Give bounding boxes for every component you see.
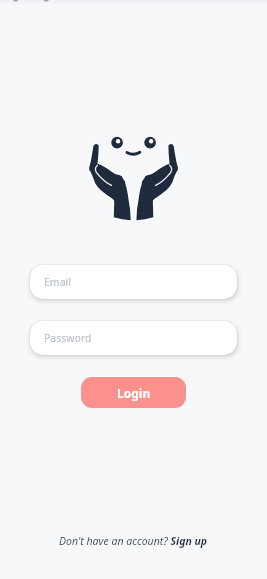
button[interactable]: Password — [30, 321, 237, 355]
staticText: Email — [44, 275, 71, 289]
button[interactable]: Don't have an account? Sign up — [59, 534, 208, 548]
button[interactable]: Login — [81, 377, 186, 408]
staticText: Login — [117, 385, 151, 401]
staticText: Password — [44, 331, 92, 345]
staticText: Don't have an account? Sign up — [59, 534, 208, 548]
button[interactable]: Email — [30, 265, 237, 299]
